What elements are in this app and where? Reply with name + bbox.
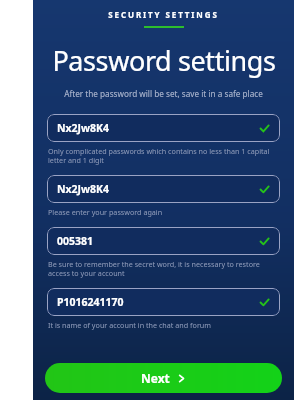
other: Valid <box>259 297 270 308</box>
staticText: Please enter your password again <box>48 207 163 217</box>
button[interactable]: P1016241170 <box>47 288 280 316</box>
staticText: Password settings <box>52 42 276 79</box>
button[interactable]: Nx2Jw8K4 <box>47 114 280 142</box>
staticText: After the password will be set, save it … <box>64 88 263 99</box>
button[interactable]: Nx2Jw8K4 <box>47 175 280 203</box>
button[interactable]: 005381 <box>47 227 280 255</box>
staticText: Nx2Jw8K4 <box>57 182 110 196</box>
staticText: SECURITY SETTINGS <box>108 9 219 20</box>
button[interactable]: Next <box>45 363 282 393</box>
staticText: P1016241170 <box>57 295 124 309</box>
staticText: It is name of your account in the chat a… <box>48 320 212 330</box>
other: Valid <box>259 123 270 134</box>
other: Valid <box>259 184 270 195</box>
staticText: Next <box>141 370 170 386</box>
other: Valid <box>259 236 270 247</box>
staticText: Only complicated passwords which contain… <box>48 146 280 165</box>
staticText: 005381 <box>57 234 94 248</box>
staticText: Be sure to remember the secret word, it … <box>48 259 280 278</box>
staticText: Nx2Jw8K4 <box>57 121 110 135</box>
